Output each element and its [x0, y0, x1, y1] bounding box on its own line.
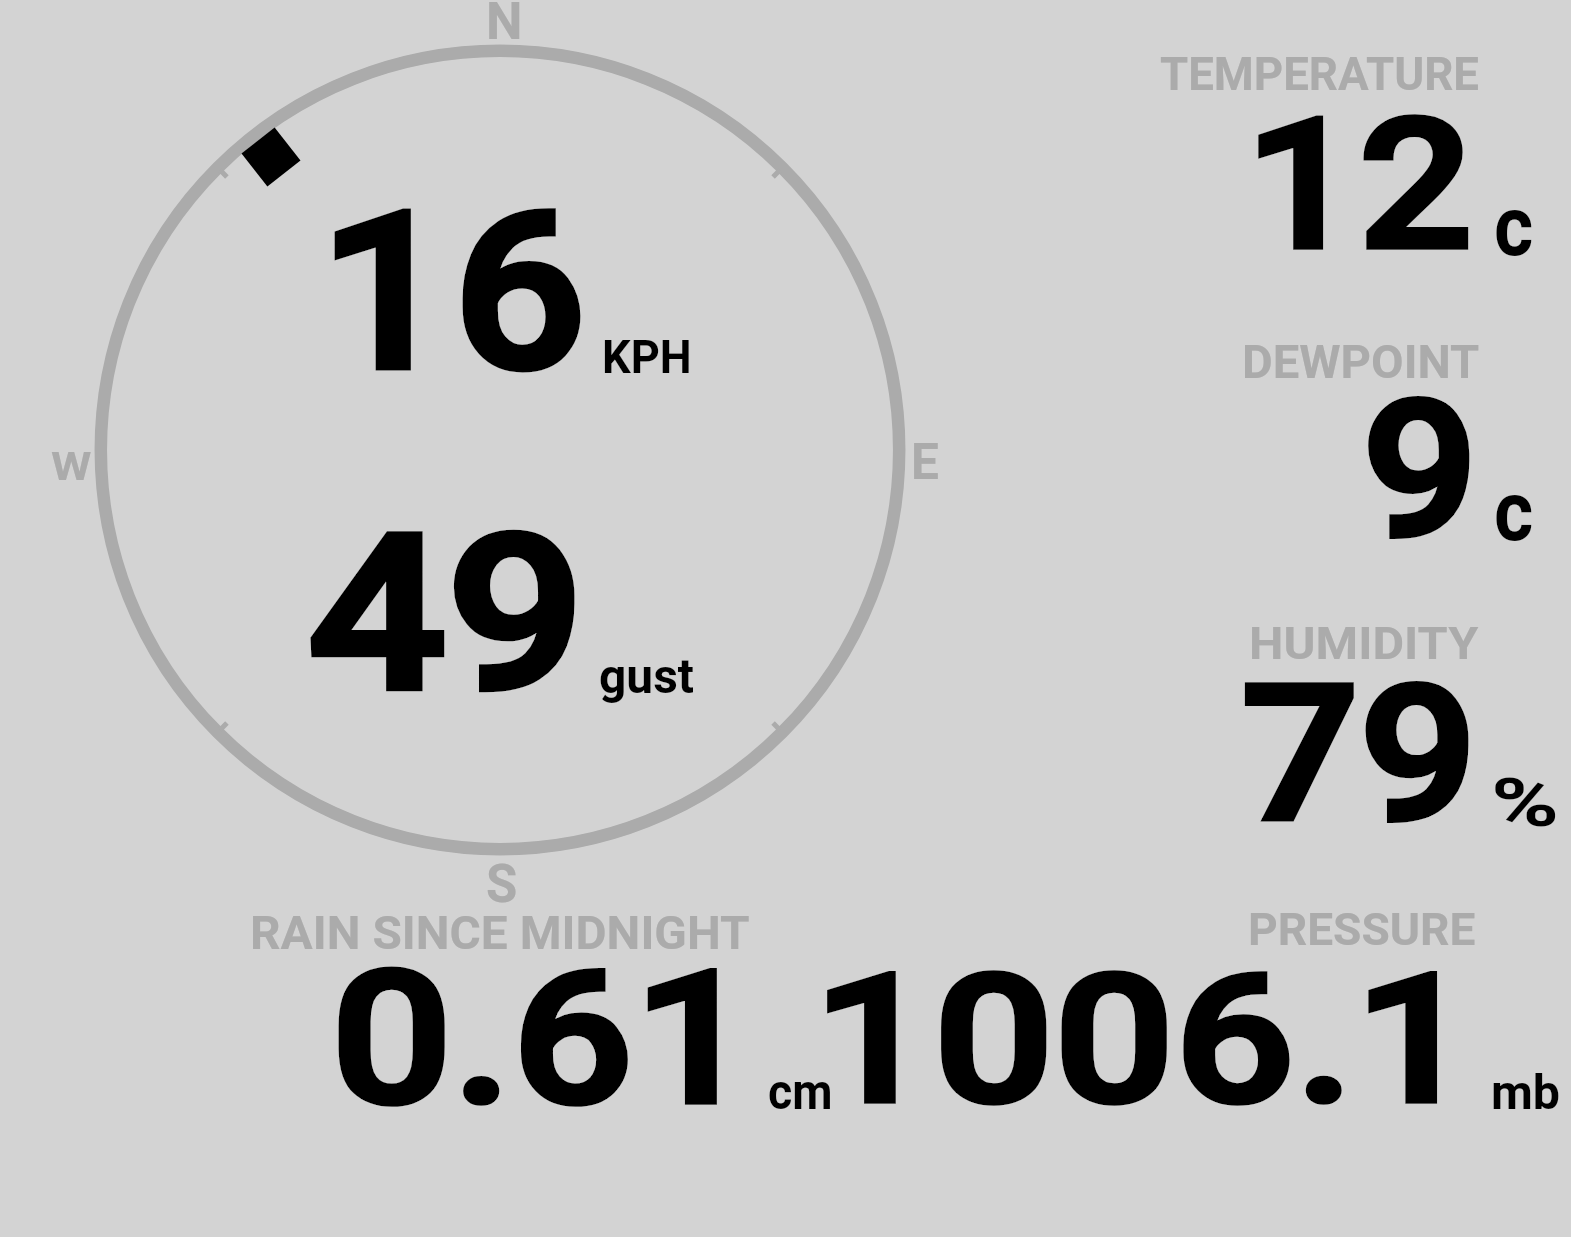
- staticText: DEWPOINT: [1242, 334, 1479, 389]
- staticText: S: [486, 853, 517, 915]
- staticText: 49: [308, 488, 586, 741]
- staticText: RAIN SINCE MIDNIGHT: [250, 907, 750, 960]
- staticText: 1006.1: [813, 936, 1475, 1144]
- staticText: c: [1494, 463, 1534, 560]
- other: Wind direction compass dial: [0, 0, 1571, 1237]
- staticText: 16: [319, 166, 587, 420]
- staticText: KPH: [602, 330, 692, 385]
- staticText: PRESSURE: [1248, 903, 1476, 956]
- staticText: mb: [1491, 1064, 1561, 1121]
- staticText: 12: [1245, 80, 1473, 291]
- staticText: 79: [1241, 646, 1478, 865]
- staticText: TEMPERATURE: [1160, 46, 1479, 101]
- staticText: %: [1491, 765, 1559, 843]
- staticText: 0.61: [331, 932, 756, 1146]
- staticText: W: [51, 444, 92, 489]
- staticText: E: [911, 432, 939, 492]
- staticText: gust: [599, 648, 695, 705]
- staticText: cm: [768, 1063, 833, 1121]
- staticText: N: [486, 0, 523, 52]
- staticText: 9: [1362, 359, 1478, 581]
- staticText: c: [1494, 178, 1534, 275]
- staticText: HUMIDITY: [1249, 617, 1478, 670]
